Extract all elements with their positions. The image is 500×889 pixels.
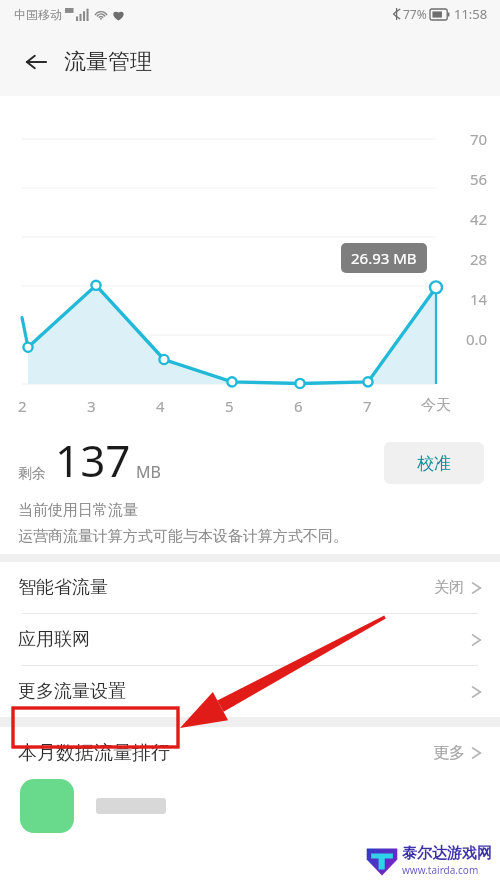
staticText: 56 <box>470 169 488 189</box>
staticText: 流量管理 <box>64 48 152 76</box>
staticText: 28 <box>470 249 488 269</box>
button[interactable]: 本月数据流量排行 <box>0 727 500 779</box>
staticText: 3 <box>87 396 96 416</box>
staticText: 更多 <box>433 743 465 763</box>
staticText: 77% <box>403 6 427 22</box>
staticText: 6 <box>294 396 303 416</box>
staticText: www.tairda.com <box>402 863 479 877</box>
staticText: 校准 <box>417 453 451 474</box>
staticText: 42 <box>470 209 488 229</box>
staticText: MB <box>136 461 161 483</box>
staticText: 智能省流量 <box>18 576 108 599</box>
staticText: 应用联网 <box>18 628 90 651</box>
button[interactable]: Back <box>12 38 60 86</box>
staticText: 4 <box>156 396 165 416</box>
staticText: 137 <box>55 430 131 490</box>
staticText: 11:58 <box>454 5 488 23</box>
staticText: 14 <box>470 289 488 309</box>
staticText: 2 <box>18 396 27 416</box>
button[interactable]: 校准 <box>384 442 484 484</box>
staticText: 本月数据流量排行 <box>18 741 170 765</box>
staticText: 中国移动 <box>14 7 62 22</box>
staticText: 当前使用日常流量 <box>18 501 138 520</box>
staticText: 5 <box>225 396 234 416</box>
button[interactable]: 更多流量设置 <box>0 666 500 717</box>
button[interactable]: 智能省流量 <box>0 562 500 613</box>
button[interactable]: 应用联网 <box>0 614 500 665</box>
staticText: 0.0 <box>466 329 488 349</box>
staticText: 剩余 <box>18 465 46 483</box>
staticText: 更多流量设置 <box>18 680 126 703</box>
staticText: 70 <box>470 129 488 149</box>
staticText: 关闭 <box>434 578 464 597</box>
staticText: 26.93 MB <box>351 248 417 268</box>
staticText: 运营商流量计算方式可能与本设备计算方式不同。 <box>18 527 348 546</box>
staticText: 7 <box>363 396 372 416</box>
staticText: 泰尔达游戏网 <box>402 844 492 863</box>
staticText: 今天 <box>421 396 451 415</box>
